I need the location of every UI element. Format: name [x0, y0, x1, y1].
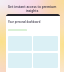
staticText: Your personal dashboard: [8, 20, 41, 24]
staticText: Get instant access to premium insights: [6, 5, 58, 13]
